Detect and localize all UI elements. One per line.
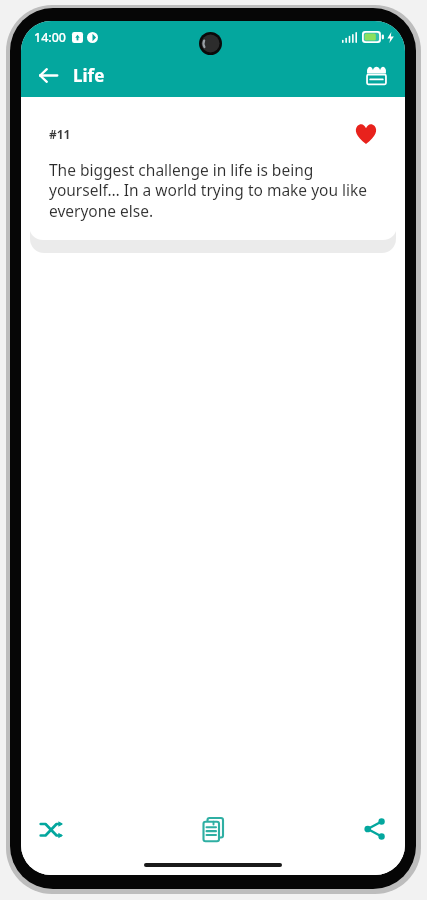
staticText: #11	[49, 126, 71, 142]
staticText: Life	[73, 64, 105, 87]
button[interactable]: Share	[277, 803, 405, 855]
button[interactable]: Copy	[149, 803, 277, 855]
button[interactable]: Back	[27, 54, 69, 96]
staticText: The biggest challenge in life is being y…	[49, 159, 383, 222]
button[interactable]: #11	[29, 105, 397, 240]
button[interactable]: Favorite	[349, 117, 383, 151]
staticText: 14:00	[34, 29, 67, 46]
button[interactable]: Shuffle	[21, 803, 149, 855]
button[interactable]: Collections	[355, 54, 397, 96]
